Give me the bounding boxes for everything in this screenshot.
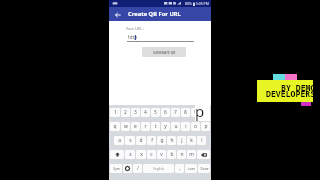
button[interactable]: t xyxy=(151,122,160,131)
staticText: i xyxy=(185,123,187,130)
staticText: 6 xyxy=(164,109,167,116)
button[interactable]: w xyxy=(121,122,130,131)
staticText: m xyxy=(189,151,194,158)
staticText: b xyxy=(170,151,174,158)
staticText: 2 xyxy=(124,109,127,116)
staticText: a xyxy=(118,137,121,144)
button[interactable]: o xyxy=(191,122,200,131)
staticText: GENERATE QR xyxy=(153,50,176,55)
button[interactable]: u xyxy=(171,122,180,131)
button[interactable]: GENERATE QR xyxy=(142,47,186,57)
staticText: 3 xyxy=(134,109,137,116)
staticText: d xyxy=(139,137,143,144)
staticText: DEVELOPERS xyxy=(266,88,316,99)
staticText: j xyxy=(181,137,183,144)
staticText: f xyxy=(151,137,153,144)
button[interactable]: 6 xyxy=(161,108,170,117)
button[interactable]: .com xyxy=(185,164,197,173)
staticText: n xyxy=(180,151,184,158)
staticText: 5 xyxy=(154,109,157,116)
staticText: r xyxy=(144,123,147,130)
button[interactable]: g xyxy=(157,136,166,145)
button[interactable]: h xyxy=(167,136,176,145)
button[interactable]: b xyxy=(167,150,176,159)
staticText: 4 xyxy=(144,109,147,116)
staticText: Create QR For URL xyxy=(128,10,181,18)
button[interactable] xyxy=(123,164,132,173)
button[interactable]: v xyxy=(157,150,166,159)
button[interactable]: i xyxy=(181,122,190,131)
button[interactable] xyxy=(110,150,124,159)
staticText: e xyxy=(134,123,137,130)
button[interactable]: z xyxy=(125,150,135,159)
button[interactable]: e xyxy=(131,122,140,131)
button[interactable]: x xyxy=(136,150,146,159)
staticText: c xyxy=(150,151,153,158)
button[interactable]: 4 xyxy=(141,108,150,117)
staticText: English xyxy=(153,167,164,171)
button[interactable]: 0 xyxy=(201,108,210,117)
staticText: Done xyxy=(200,167,209,171)
staticText: h xyxy=(170,137,174,144)
button[interactable]: English xyxy=(143,164,174,173)
staticText: 7 xyxy=(174,109,177,116)
staticText: Your URL : xyxy=(126,26,144,31)
button[interactable]: 5 xyxy=(151,108,160,117)
staticText: 80% xyxy=(185,1,192,6)
staticText: v xyxy=(160,151,163,158)
staticText: BY DEMO xyxy=(281,82,316,93)
staticText: .com xyxy=(187,167,195,171)
staticText: u xyxy=(174,123,178,130)
button[interactable]: r xyxy=(141,122,150,131)
button[interactable]: l xyxy=(197,136,206,145)
staticText: 1 xyxy=(114,109,117,116)
staticText: t xyxy=(155,123,157,130)
button[interactable]: 7 xyxy=(171,108,180,117)
staticText: p xyxy=(195,101,205,121)
staticText: http xyxy=(128,34,137,40)
button[interactable] xyxy=(197,150,210,159)
button[interactable]: c xyxy=(147,150,156,159)
button[interactable]: y xyxy=(161,122,170,131)
button[interactable]: 8 xyxy=(181,108,190,117)
button[interactable]: / xyxy=(133,164,142,173)
button[interactable]: 9 xyxy=(191,108,200,117)
staticText: g xyxy=(160,137,164,144)
staticText: p xyxy=(204,123,208,130)
button[interactable]: 2 xyxy=(121,108,130,117)
staticText: k xyxy=(190,137,193,144)
staticText: s xyxy=(129,137,132,144)
button[interactable]: , xyxy=(175,164,184,173)
button[interactable]: f xyxy=(147,136,156,145)
button[interactable]: k xyxy=(187,136,196,145)
button[interactable]: d xyxy=(136,136,146,145)
button[interactable]: s xyxy=(125,136,135,145)
button[interactable]: q xyxy=(110,122,120,131)
staticText: 9 xyxy=(194,109,197,116)
staticText: x xyxy=(140,151,143,158)
button[interactable]: Done xyxy=(198,164,210,173)
staticText: w xyxy=(124,123,128,130)
button[interactable]: n xyxy=(177,150,186,159)
button[interactable]: 1 xyxy=(110,108,120,117)
button[interactable]: 3 xyxy=(131,108,140,117)
staticText: , xyxy=(179,165,181,172)
staticText: 8 xyxy=(184,109,187,116)
button[interactable]: a xyxy=(114,136,124,145)
button[interactable]: m xyxy=(187,150,196,159)
button[interactable]: Back xyxy=(112,9,123,20)
button[interactable]: p xyxy=(201,122,210,131)
staticText: 5:05 PM xyxy=(196,1,209,6)
button[interactable]: j xyxy=(177,136,186,145)
button[interactable]: Sym xyxy=(110,164,122,173)
staticText: q xyxy=(113,123,117,130)
staticText: z xyxy=(129,151,132,158)
staticText: o xyxy=(194,123,197,130)
staticText: Sym xyxy=(113,167,120,171)
staticText: y xyxy=(164,123,167,130)
staticText: l xyxy=(201,137,203,144)
staticText: / xyxy=(137,165,139,172)
